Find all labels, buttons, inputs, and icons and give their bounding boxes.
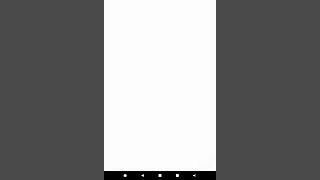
button[interactable]: Back [135, 171, 152, 180]
button[interactable]: Recent apps [169, 171, 186, 180]
button[interactable]: Home [152, 171, 169, 180]
button[interactable]: Previous [118, 171, 135, 180]
button[interactable]: Volume [186, 171, 203, 180]
